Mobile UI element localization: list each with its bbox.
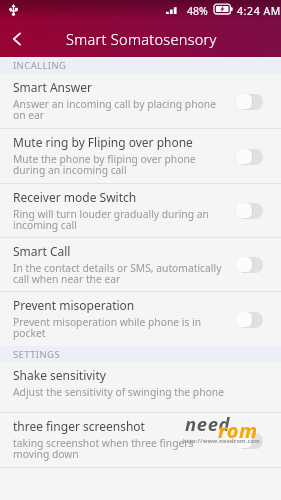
button[interactable]: [236, 432, 263, 449]
button[interactable]: [236, 256, 263, 273]
staticText: three finger screenshot: [13, 418, 145, 434]
button[interactable]: [236, 148, 263, 165]
button[interactable]: Receiver mode Switch: [0, 184, 281, 237]
button[interactable]: three finger screenshot: [0, 413, 281, 467]
button[interactable]: [236, 93, 263, 110]
button[interactable]: Smart Answer: [0, 74, 281, 128]
staticText: need: [185, 411, 231, 436]
staticText: rom: [218, 417, 258, 444]
staticText: 4:24 AM: [237, 4, 281, 18]
button[interactable]: Mute ring by Fliping over phone: [0, 129, 281, 183]
staticText: Prevent misoperation: [13, 297, 135, 313]
staticText: In the contact details or SMS, automatic…: [13, 261, 229, 286]
staticText: taking screenshot when three fingers mov…: [13, 436, 229, 461]
staticText: 48%: [187, 4, 208, 18]
staticText: Answer an incoming call by placing phone…: [13, 97, 229, 122]
button[interactable]: [236, 311, 263, 328]
button[interactable]: Back: [0, 22, 34, 56]
staticText: Receiver mode Switch: [13, 189, 137, 205]
staticText: Ring will turn louder gradually during a…: [13, 207, 229, 232]
staticText: Smart Somatosensory: [66, 29, 217, 49]
button[interactable]: Smart Call: [0, 238, 281, 291]
staticText: Adjust the sensitivity of swinging the p…: [13, 385, 224, 399]
staticText: Mute the phone by fliping over phone dur…: [13, 152, 229, 177]
button[interactable]: Prevent misoperation: [0, 292, 281, 346]
staticText: Shake sensitivity: [13, 367, 106, 383]
button[interactable]: [236, 202, 263, 219]
staticText: Prevent misoperation while phone is in p…: [13, 315, 229, 340]
staticText: Smart Call: [13, 243, 71, 259]
staticText: http://www.needrom.com: [183, 437, 260, 445]
staticText: Smart Answer: [13, 79, 92, 95]
staticText: SETTINGS: [13, 348, 61, 361]
staticText: INCALLING: [13, 59, 67, 72]
staticText: Mute ring by Fliping over phone: [13, 134, 193, 150]
button[interactable]: Shake sensitivity: [0, 362, 281, 412]
